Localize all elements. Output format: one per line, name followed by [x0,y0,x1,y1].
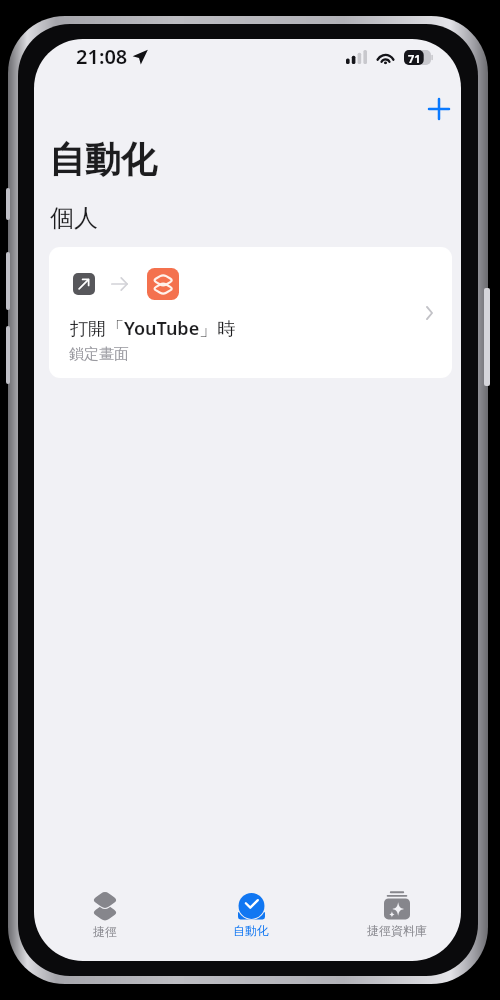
button[interactable]: 自動化 [191,882,311,944]
button[interactable]: Add automation [419,89,459,129]
staticText: 捷徑資料庫 [367,923,427,938]
staticText: 21:08 [76,43,128,70]
staticText: 捷徑 [93,924,117,939]
staticText: 自動化 [49,137,157,182]
button[interactable]: 捷徑 [45,881,165,943]
staticText: 71 [408,51,421,66]
staticText: 自動化 [233,923,269,938]
staticText: 打開「YouTube」時 [70,316,236,341]
button[interactable]: 捷徑資料庫 [337,880,457,942]
staticText: 個人 [50,203,98,233]
staticText: 鎖定畫面 [69,345,129,364]
button[interactable]: 打開「YouTube」時 [49,247,452,378]
